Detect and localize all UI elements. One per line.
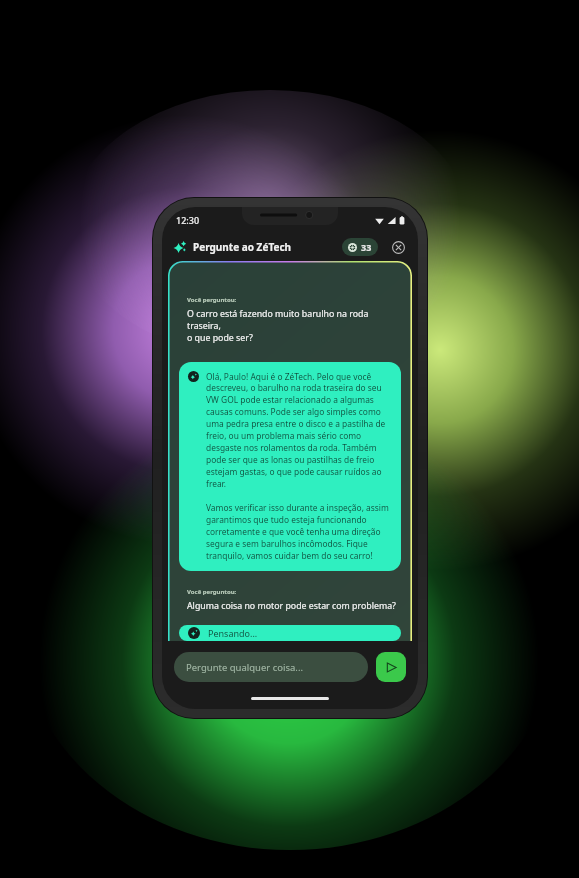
- staticText: Pensando...: [208, 627, 258, 639]
- staticText: Olá, Paulo! Aqui é o ZéTech. Pelo que vo…: [206, 371, 392, 562]
- button[interactable]: Olá, Paulo! Aqui é o ZéTech. Pelo que vo…: [179, 362, 401, 571]
- button[interactable]: Pergunte qualquer coisa...: [174, 652, 368, 682]
- staticText: 12:30: [176, 214, 200, 226]
- staticText: O carro está fazendo muito barulho na ro…: [187, 308, 401, 344]
- staticText: Você perguntou:: [187, 588, 237, 596]
- staticText: Alguma coisa no motor pode estar com pro…: [187, 600, 396, 612]
- staticText: Você perguntou:: [187, 296, 237, 304]
- staticText: Pergunte ao ZéTech: [193, 240, 292, 254]
- button[interactable]: 33: [342, 238, 378, 256]
- staticText: Pergunte qualquer coisa...: [186, 661, 304, 674]
- button[interactable]: Enviar: [376, 652, 406, 682]
- button[interactable]: Pensando...: [179, 625, 401, 641]
- staticText: 33: [361, 241, 372, 253]
- button[interactable]: Fechar: [390, 239, 406, 255]
